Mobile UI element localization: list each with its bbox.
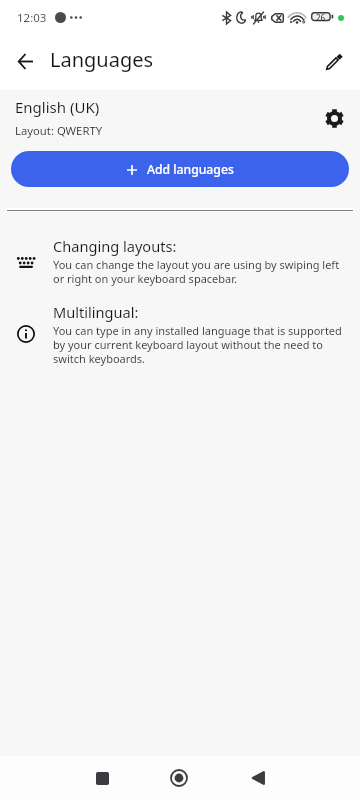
button[interactable]: Back — [3, 40, 48, 85]
staticText: You can type in any installed language t… — [53, 324, 344, 366]
button[interactable]: Edit — [311, 40, 356, 85]
staticText: Multilingual: — [53, 302, 139, 322]
button[interactable]: Recent apps — [80, 756, 124, 800]
staticText: Add languages — [147, 161, 234, 178]
button[interactable]: Back — [236, 756, 280, 800]
button[interactable]: Home — [157, 756, 201, 800]
staticText: 26 — [316, 12, 326, 23]
staticText: You can change the layout you are using … — [53, 258, 344, 286]
staticText: English (UK) — [15, 97, 100, 117]
staticText: Languages — [50, 46, 154, 73]
staticText: Layout: QWERTY — [15, 123, 103, 138]
staticText: 12:03 — [17, 10, 47, 26]
button[interactable]: Settings — [315, 99, 353, 137]
button[interactable]: Add languages — [11, 151, 349, 187]
staticText: Changing layouts: — [53, 236, 177, 256]
button[interactable]: English (UK) — [0, 90, 360, 151]
